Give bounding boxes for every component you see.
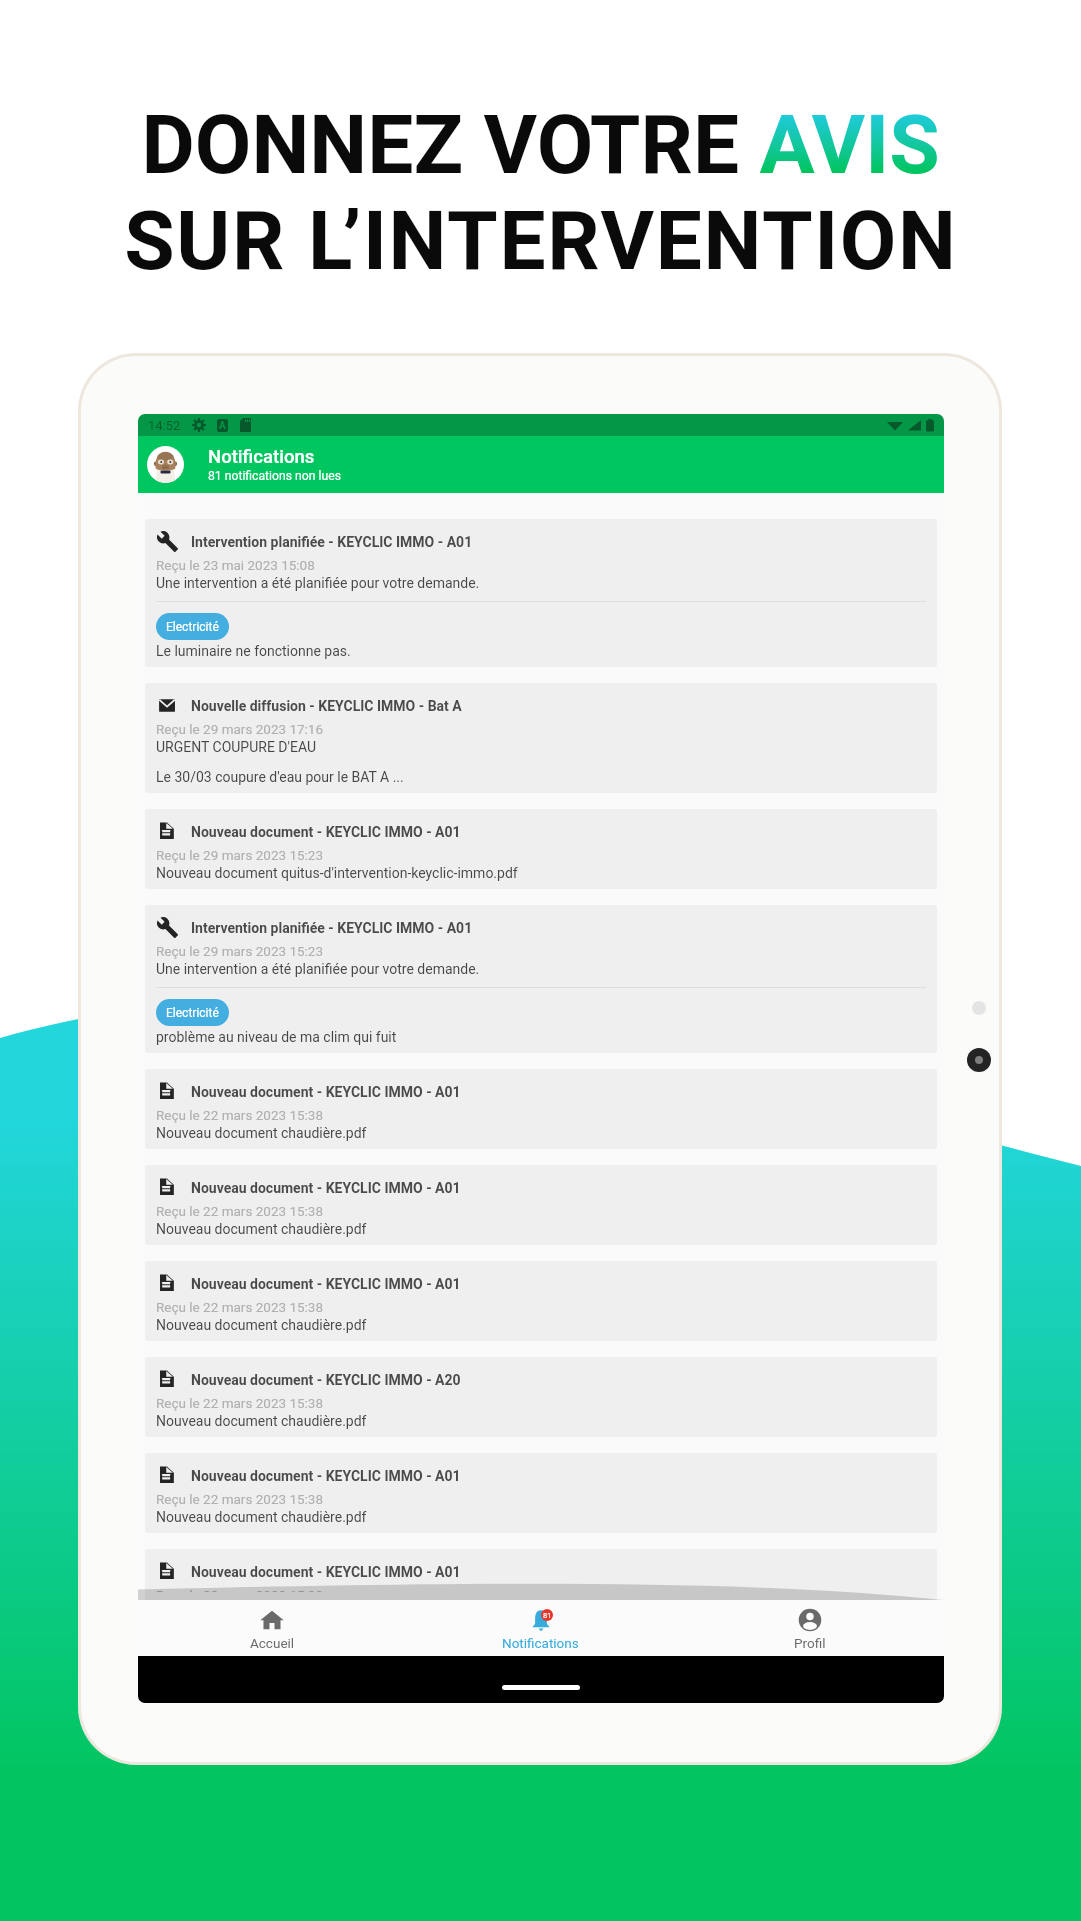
staticText: Nouveau document - KEYCLIC IMMO - A01: [191, 1084, 461, 1100]
staticText: Nouveau document - KEYCLIC IMMO - A01: [191, 1180, 461, 1196]
button[interactable]: Intervention planifiée - KEYCLIC IMMO - …: [145, 905, 937, 1053]
staticText: 81 notifications non lues: [208, 469, 341, 483]
staticText: Intervention planifiée - KEYCLIC IMMO - …: [191, 920, 473, 936]
staticText: Reçu le 29 mars 2023 15:23: [156, 847, 324, 863]
staticText: Le luminaire ne fonctionne pas.: [156, 643, 351, 659]
button[interactable]: Nouveau document - KEYCLIC IMMO - A20: [145, 1357, 937, 1437]
button[interactable]: Nouveau document - KEYCLIC IMMO - A01: [145, 1165, 937, 1245]
staticText: URGENT COUPURE D'EAU: [156, 739, 317, 755]
staticText: Notifications: [502, 1635, 579, 1651]
staticText: Nouveau document chaudière.pdf: [156, 1509, 367, 1525]
staticText: Reçu le 29 mars 2023 17:16: [156, 721, 324, 737]
staticText: Le 30/03 coupure d'eau pour le BAT A ...: [156, 769, 404, 785]
staticText: Nouveau document - KEYCLIC IMMO - A01: [191, 824, 461, 840]
staticText: Accueil: [250, 1635, 295, 1651]
button[interactable]: Profil: [675, 1600, 944, 1656]
button[interactable]: 81: [406, 1600, 675, 1656]
staticText: Reçu le 22 mars 2023 15:38: [156, 1491, 324, 1507]
button[interactable]: Nouveau document - KEYCLIC IMMO - A01: [145, 1453, 937, 1533]
staticText: Nouveau document chaudière.pdf: [156, 1221, 367, 1237]
staticText: Reçu le 22 mars 2023 15:38: [156, 1299, 324, 1315]
staticText: Notifications: [208, 446, 315, 468]
button[interactable]: Nouvelle diffusion - KEYCLIC IMMO - Bat …: [145, 683, 937, 793]
staticText: Une intervention a été planifiée pour vo…: [156, 575, 480, 591]
staticText: Electricité: [166, 1006, 219, 1020]
staticText: Nouveau document - KEYCLIC IMMO - A01: [191, 1468, 461, 1484]
button[interactable]: Nouveau document - KEYCLIC IMMO - A01: [145, 1069, 937, 1149]
staticText: problème au niveau de ma clim qui fuit: [156, 1029, 397, 1045]
staticText: Reçu le 23 mai 2023 15:08: [156, 557, 315, 573]
staticText: 14:52: [148, 418, 181, 433]
button[interactable]: Intervention planifiée - KEYCLIC IMMO - …: [145, 519, 937, 667]
staticText: A: [219, 420, 226, 432]
staticText: Reçu le 22 mars 2023 15:38: [156, 1203, 324, 1219]
staticText: Nouveau document - KEYCLIC IMMO - A01: [191, 1564, 461, 1580]
staticText: Nouveau document chaudière.pdf: [156, 1413, 367, 1429]
button[interactable]: Profile avatar: [147, 446, 184, 483]
staticText: Nouvelle diffusion - KEYCLIC IMMO - Bat …: [191, 698, 462, 714]
button[interactable]: Nouveau document - KEYCLIC IMMO - A01: [145, 1549, 937, 1600]
staticText: Reçu le 29 mars 2023 15:23: [156, 943, 324, 959]
staticText: DONNEZ VOTRE AVIS: [141, 97, 940, 193]
staticText: 81: [543, 1611, 552, 1620]
staticText: Nouveau document quitus-d'intervention-k…: [156, 865, 518, 881]
staticText: Nouveau document chaudière.pdf: [156, 1317, 367, 1333]
button[interactable]: Nouveau document - KEYCLIC IMMO - A01: [145, 1261, 937, 1341]
staticText: Une intervention a été planifiée pour vo…: [156, 961, 480, 977]
staticText: Intervention planifiée - KEYCLIC IMMO - …: [191, 534, 473, 550]
button[interactable]: Electricité: [156, 999, 229, 1026]
staticText: Electricité: [166, 620, 219, 634]
button[interactable]: Accueil: [138, 1600, 406, 1656]
button[interactable]: Nouveau document - KEYCLIC IMMO - A01: [145, 809, 937, 889]
staticText: Nouveau document chaudière.pdf: [156, 1125, 367, 1141]
staticText: Reçu le 22 mars 2023 15:38: [156, 1395, 324, 1411]
button[interactable]: Electricité: [156, 613, 229, 640]
staticText: Nouveau document - KEYCLIC IMMO - A01: [191, 1276, 461, 1292]
staticText: SUR L’INTERVENTION: [124, 193, 958, 289]
staticText: Reçu le 22 mars 2023 15:38: [156, 1107, 324, 1123]
staticText: Profil: [794, 1635, 826, 1651]
staticText: Reçu le 22 mars 2023 15:38: [156, 1587, 324, 1592]
staticText: Nouveau document - KEYCLIC IMMO - A20: [191, 1372, 461, 1388]
